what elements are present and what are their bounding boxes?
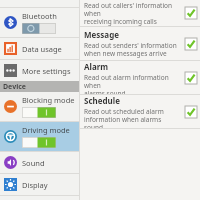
staticText: Display bbox=[22, 180, 48, 190]
button[interactable]: Blocking mode bbox=[0, 92, 79, 121]
staticText: Read out scheduled alarm information whe… bbox=[84, 107, 182, 128]
button[interactable] bbox=[22, 107, 56, 118]
staticText: Read out alarm information when alarms s… bbox=[84, 73, 182, 94]
button[interactable] bbox=[22, 137, 56, 148]
staticText: Sound bbox=[22, 158, 45, 168]
staticText: Read out senders' information when new m… bbox=[84, 41, 177, 58]
staticText: Device bbox=[3, 82, 27, 92]
button[interactable]: Checkbox, checked bbox=[185, 7, 197, 19]
staticText: Bluetooth bbox=[22, 11, 57, 21]
button[interactable]: Data usage bbox=[0, 38, 79, 59]
staticText: Alarm bbox=[84, 61, 109, 72]
button[interactable]: Checkbox, checked bbox=[185, 38, 197, 50]
staticText: Read out callers' information when recei… bbox=[84, 1, 182, 26]
button[interactable]: Checkbox, checked bbox=[185, 106, 197, 118]
staticText: Data usage bbox=[22, 44, 62, 54]
staticText: Driving mode bbox=[22, 125, 70, 135]
staticText: Blocking mode bbox=[22, 95, 75, 105]
button[interactable]: Message bbox=[80, 27, 200, 60]
staticText: Schedule bbox=[84, 95, 120, 106]
button[interactable] bbox=[22, 23, 56, 34]
button[interactable]: Alarm bbox=[80, 61, 200, 94]
button[interactable]: Bluetooth bbox=[0, 8, 79, 37]
button[interactable]: Driving mode bbox=[0, 122, 79, 151]
button[interactable]: Sound bbox=[0, 152, 79, 173]
button[interactable]: Schedule bbox=[80, 95, 200, 128]
button[interactable]: Checkbox, checked bbox=[185, 72, 197, 84]
staticText: Message bbox=[84, 29, 119, 40]
button[interactable]: Display bbox=[0, 174, 79, 195]
button[interactable]: Read out callers' information when recei… bbox=[80, 0, 200, 26]
button[interactable]: More settings bbox=[0, 60, 79, 81]
staticText: More settings bbox=[22, 66, 71, 76]
